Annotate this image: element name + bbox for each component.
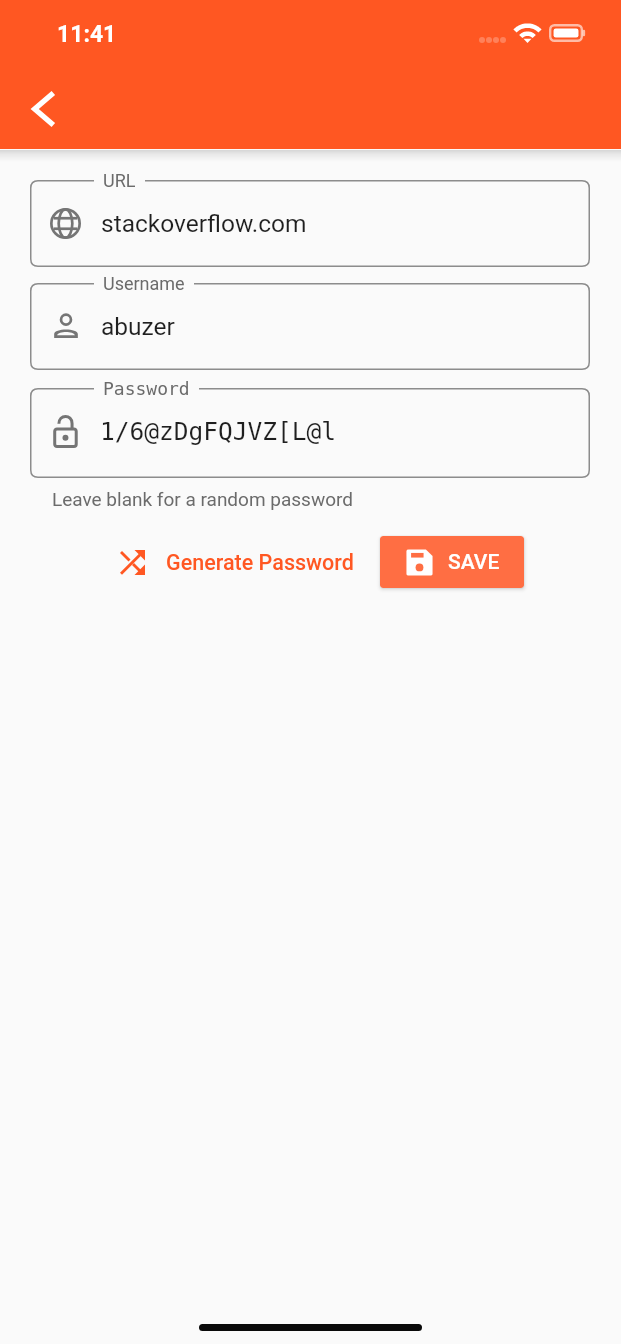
button[interactable]: Generate Password xyxy=(104,536,370,588)
staticText: 1/6@zDgFQJVZ[L@l xyxy=(100,417,337,446)
button[interactable]: abuzer xyxy=(30,283,590,370)
staticText: SAVE xyxy=(448,550,500,575)
staticText: Leave blank for a random password xyxy=(52,488,354,510)
staticText: Password xyxy=(103,378,190,399)
staticText: Generate Password xyxy=(166,550,354,575)
staticText: Username xyxy=(103,273,185,294)
button[interactable]: 1/6@zDgFQJVZ[L@l xyxy=(30,388,590,478)
staticText: URL xyxy=(103,170,136,191)
staticText: stackoverflow.com xyxy=(101,209,307,238)
button[interactable]: Back xyxy=(15,81,71,137)
button[interactable]: stackoverflow.com xyxy=(30,180,590,267)
staticText: abuzer xyxy=(101,312,175,341)
button[interactable]: SAVE xyxy=(380,536,524,588)
staticText: 11:41 xyxy=(57,21,117,48)
